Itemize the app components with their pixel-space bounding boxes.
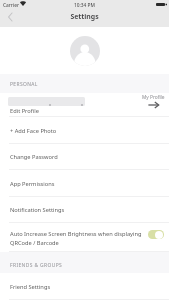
button[interactable]: Auto increase screen brightness toggle: [148, 230, 164, 239]
staticText: My Profile: [142, 94, 165, 101]
staticText: Edit Profile: [10, 107, 39, 115]
button[interactable]: + Add Face Photo: [0, 117, 169, 144]
staticText: PERSONAL: [10, 81, 38, 88]
button[interactable]: Auto Increase Screen Brightness when dis…: [0, 223, 169, 252]
staticText: App Permissions: [10, 180, 55, 188]
button[interactable]: App Permissions: [0, 170, 169, 197]
button[interactable]: Edit Profile: [0, 93, 169, 117]
staticText: 10:34 PM: [0, 2, 169, 9]
staticText: Friend Settings: [10, 283, 51, 291]
staticText: Auto Increase Screen Brightness when dis…: [10, 230, 142, 246]
staticText: + Add Face Photo: [10, 127, 57, 135]
staticText: Notification Settings: [10, 206, 65, 214]
button[interactable]: Change Password: [0, 144, 169, 170]
staticText: Change Password: [10, 153, 58, 161]
button[interactable]: Friend Settings: [0, 273, 169, 300]
staticText: Carrier: [3, 2, 19, 9]
staticText: FRIENDS & GROUPS: [10, 262, 63, 269]
button[interactable]: Notification Settings: [0, 197, 169, 223]
staticText: Settings: [0, 12, 169, 21]
button[interactable]: Back: [2, 9, 17, 24]
